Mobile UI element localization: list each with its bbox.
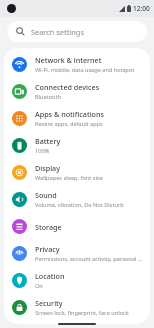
button[interactable]: Apps & notifications — [4, 105, 150, 132]
staticText: Security — [35, 298, 63, 308]
staticText: Battery — [35, 136, 61, 146]
staticText: Apps & notifications — [35, 109, 104, 119]
button[interactable]: Search — [7, 21, 147, 42]
staticText: On — [35, 282, 43, 290]
staticText: Storage — [35, 222, 62, 232]
staticText: Permissions, account activity, personal … — [35, 255, 144, 263]
staticText: Display — [35, 163, 60, 173]
button[interactable]: Privacy — [4, 240, 150, 267]
button[interactable]: Battery — [4, 132, 150, 159]
staticText: Volume, vibration, Do Not Disturb — [35, 201, 124, 209]
staticText: Screen lock, fingerprint, face unlock — [35, 309, 129, 317]
staticText: 12:00 — [133, 4, 150, 13]
other: Search — [16, 27, 25, 36]
staticText: Wallpaper, sleep, font size — [35, 174, 103, 182]
staticText: Recent apps, default apps — [35, 120, 103, 128]
button[interactable]: Display — [4, 159, 150, 186]
staticText: Bluetooth — [35, 93, 61, 101]
button[interactable]: Connected devices — [4, 78, 150, 105]
staticText: Privacy — [35, 244, 60, 254]
button[interactable]: Sound — [4, 186, 150, 213]
staticText: Search settings — [31, 27, 84, 37]
button[interactable]: Network & internet — [4, 51, 150, 78]
staticText: 100% — [35, 147, 50, 155]
staticText: Wi-Fi, mobile, data usage and hotspot — [35, 66, 135, 74]
staticText: Sound — [35, 190, 57, 200]
staticText: Connected devices — [35, 82, 100, 92]
button[interactable]: Storage — [4, 213, 150, 240]
staticText: Location — [35, 271, 65, 281]
button[interactable]: Security — [4, 294, 150, 321]
button[interactable]: Location — [4, 267, 150, 294]
staticText: Network & internet — [35, 55, 102, 65]
